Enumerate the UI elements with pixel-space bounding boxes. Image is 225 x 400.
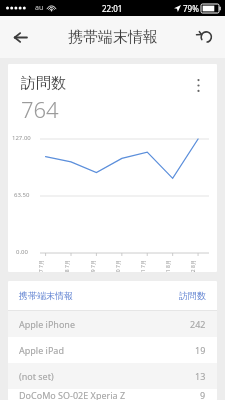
staticText: DoCoMo SO-02E Xperia Z [19,389,126,400]
staticText: 31 7月 [140,260,147,272]
staticText: Apple iPhone [19,318,75,330]
button[interactable]: Back [0,17,40,57]
button[interactable]: Apple iPhone [8,311,217,337]
button[interactable]: More options [187,74,209,96]
staticText: 28 7月 [64,260,71,272]
staticText: 01 8月 [165,260,172,272]
button[interactable]: (not set) [8,363,217,389]
staticText: 764 [21,94,59,124]
staticText: 127.00 [12,134,31,142]
staticText: 9 [200,389,206,400]
button[interactable]: DoCoMo SO-02E Xperia Z [8,389,217,400]
staticText: au [35,3,44,13]
staticText: (not set) [19,370,54,382]
staticText: 22:01 [102,3,123,14]
button[interactable]: Apple iPad [8,337,217,363]
staticText: 訪問数 [21,74,66,93]
staticText: 0.00 [16,248,28,256]
staticText: 19 [195,344,206,356]
staticText: 02 8月 [190,260,197,272]
button[interactable]: Refresh [185,17,225,57]
button[interactable]: 携帯端末情報 [8,281,217,310]
staticText: 13 [195,370,206,382]
staticText: Apple iPad [19,344,64,356]
staticText: 携帯端末情報 [68,28,158,47]
staticText: 29 7月 [90,260,97,272]
staticText: 27 7月 [38,260,45,272]
staticText: 242 [190,318,206,330]
staticText: 63.50 [14,191,30,199]
staticText: 30 7月 [115,260,122,272]
staticText: 訪問数 [179,290,206,301]
staticText: 79% [183,3,199,14]
staticText: 携帯端末情報 [19,290,73,301]
